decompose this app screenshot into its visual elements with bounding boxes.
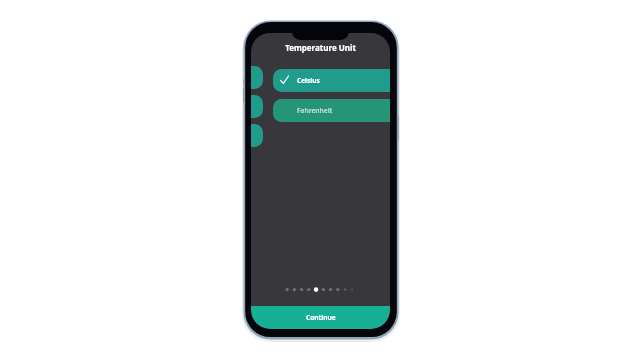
staticText: Celsius bbox=[297, 76, 320, 85]
staticText: Fahrenheit bbox=[297, 106, 333, 115]
button[interactable]: Continue bbox=[251, 306, 390, 329]
button[interactable] bbox=[251, 124, 263, 147]
button[interactable] bbox=[251, 95, 263, 118]
button[interactable] bbox=[251, 66, 263, 89]
button[interactable]: Fahrenheit bbox=[273, 99, 390, 122]
staticText: Temperature Unit bbox=[285, 42, 356, 53]
staticText: Continue bbox=[306, 313, 336, 322]
button[interactable]: Celsius bbox=[273, 69, 390, 92]
